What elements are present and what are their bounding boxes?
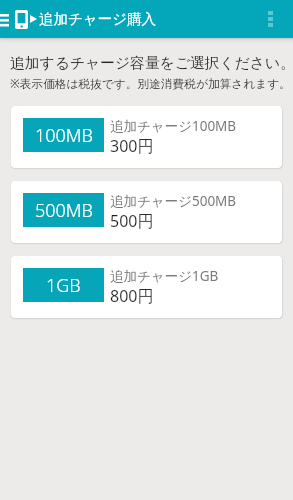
staticText: 追加チャージ100MB (110, 117, 237, 135)
staticText: 追加チャージ1GB (110, 267, 219, 285)
button[interactable]: Menu (0, 0, 9, 38)
staticText: 追加チャージ500MB (110, 192, 237, 210)
staticText: ※表示価格は税抜です。別途消費税が加算されます。 (10, 75, 291, 91)
staticText: 500MB (35, 198, 93, 223)
staticText: 100MB (35, 123, 93, 148)
staticText: 追加するチャージ容量をご選択ください。 (10, 54, 293, 73)
staticText: 500円 (110, 210, 154, 232)
button[interactable]: 100MB (11, 106, 282, 168)
staticText: 1GB (46, 273, 81, 298)
staticText: 300円 (110, 135, 154, 157)
button[interactable]: 1GB (11, 256, 282, 318)
staticText: 800円 (110, 285, 154, 307)
button[interactable]: More options (258, 0, 283, 38)
staticText: 追加チャージ購入 (39, 10, 157, 28)
button[interactable]: 500MB (11, 181, 282, 243)
button[interactable]: Device (15, 0, 28, 38)
